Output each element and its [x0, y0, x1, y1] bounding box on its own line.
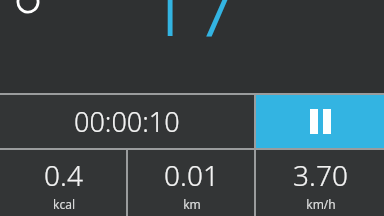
staticText: kcal	[53, 196, 75, 212]
staticText: km	[183, 196, 201, 212]
staticText: 3.70	[293, 156, 348, 194]
staticText: 17	[143, 0, 242, 37]
button[interactable]: Refresh	[14, 0, 42, 16]
staticText: 00:00:10	[74, 103, 180, 140]
button[interactable]: 0.01	[128, 150, 254, 216]
button[interactable]: Pause	[256, 95, 384, 148]
staticText: km/h	[306, 196, 336, 212]
button[interactable]: 3.70	[256, 150, 384, 216]
staticText: 0.01	[164, 156, 219, 194]
button[interactable]: 00:00:10	[0, 95, 254, 148]
staticText: 0.4	[44, 156, 83, 194]
button[interactable]: 0.4	[0, 150, 126, 216]
